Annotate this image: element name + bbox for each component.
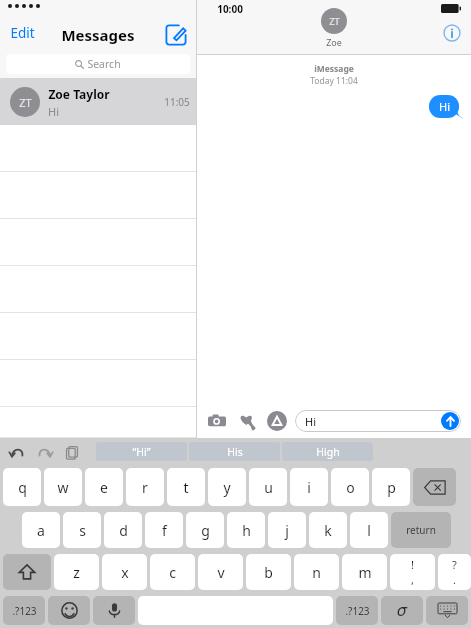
button[interactable]: x — [102, 554, 147, 590]
button[interactable]: Dictation — [93, 596, 135, 625]
button[interactable]: Send — [441, 412, 459, 430]
button[interactable]: Undo — [8, 443, 26, 461]
staticText: ZT — [329, 15, 340, 28]
staticText: Today 11:04 — [310, 75, 358, 87]
staticText: q — [18, 478, 27, 497]
button[interactable]: d — [104, 512, 142, 548]
staticText: n — [312, 563, 321, 582]
button[interactable]: Details — [443, 24, 461, 42]
button[interactable]: Search — [6, 54, 190, 74]
button[interactable]: q — [3, 468, 41, 506]
button[interactable]: Digital Touch — [237, 411, 257, 431]
button[interactable]: p — [372, 468, 410, 506]
staticText: ! — [411, 557, 414, 572]
button[interactable]: e — [85, 468, 123, 506]
button[interactable]: Redo — [36, 443, 54, 461]
staticText: m — [358, 563, 372, 582]
button[interactable]: v — [198, 554, 243, 590]
button[interactable]: Handwriting — [381, 596, 423, 625]
staticText: h — [242, 521, 251, 540]
button[interactable]: c — [150, 554, 195, 590]
staticText: a — [37, 521, 45, 540]
button[interactable]: Camera — [207, 411, 227, 431]
button[interactable]: k — [309, 512, 347, 548]
button[interactable]: His — [189, 442, 280, 461]
staticText: z — [73, 563, 80, 582]
button[interactable]: t — [167, 468, 205, 506]
button[interactable]: Compose new message — [164, 23, 188, 47]
button[interactable]: “Hi” — [96, 442, 187, 461]
staticText: His — [227, 445, 243, 459]
button[interactable]: ? — [438, 554, 471, 590]
button[interactable]: h — [227, 512, 265, 548]
button[interactable]: Edit — [6, 22, 39, 44]
staticText: w — [57, 478, 69, 497]
staticText: b — [264, 563, 273, 582]
staticText: Zoe Taylor — [48, 86, 110, 102]
button[interactable]: r — [126, 468, 164, 506]
staticText: Search — [87, 57, 121, 71]
staticText: High — [316, 445, 340, 459]
staticText: Zoe — [326, 36, 342, 48]
button[interactable]: z — [54, 554, 99, 590]
staticText: s — [79, 521, 86, 540]
staticText: l — [367, 521, 371, 540]
button[interactable]: m — [342, 554, 387, 590]
button[interactable]: ! — [390, 554, 435, 590]
button[interactable]: App Store — [267, 411, 287, 431]
staticText: i — [307, 478, 311, 497]
button[interactable]: ZT — [0, 79, 196, 125]
staticText: y — [223, 478, 231, 497]
staticText: x — [121, 563, 129, 582]
button[interactable]: Hi — [295, 410, 461, 432]
button[interactable]: j — [268, 512, 306, 548]
button[interactable]: s — [63, 512, 101, 548]
staticText: k — [324, 521, 332, 540]
staticText: o — [346, 478, 355, 497]
staticText: . — [453, 572, 456, 587]
staticText: Hi — [439, 99, 450, 114]
staticText: iMessage — [314, 63, 354, 75]
staticText: u — [264, 478, 273, 497]
button[interactable]: Hide keyboard — [426, 596, 468, 625]
staticText: r — [142, 478, 148, 497]
staticText: Hi — [48, 104, 59, 119]
button[interactable]: High — [282, 442, 373, 461]
button[interactable]: i — [290, 468, 328, 506]
button[interactable]: Emoji — [48, 596, 90, 625]
button[interactable]: ZT — [321, 8, 347, 48]
button[interactable]: .?123 — [336, 596, 378, 625]
button[interactable]: o — [331, 468, 369, 506]
staticText: .?123 — [345, 604, 370, 618]
button[interactable]: g — [186, 512, 224, 548]
button[interactable]: return — [391, 512, 451, 548]
button[interactable]: u — [249, 468, 287, 506]
staticText: 𝜎 — [397, 603, 407, 619]
button[interactable]: w — [44, 468, 82, 506]
staticText: return — [406, 523, 436, 537]
staticText: v — [217, 563, 225, 582]
staticText: j — [285, 521, 289, 540]
button[interactable]: b — [246, 554, 291, 590]
staticText: 10:00 — [217, 2, 243, 16]
staticText: .?123 — [12, 604, 37, 618]
button[interactable]: f — [145, 512, 183, 548]
staticText: “Hi” — [132, 445, 151, 459]
staticText: f — [162, 521, 167, 540]
staticText: ? — [452, 557, 457, 572]
button[interactable]: l — [350, 512, 388, 548]
button[interactable]: Paste — [64, 444, 80, 460]
staticText: ZT — [19, 95, 32, 110]
button[interactable]: n — [294, 554, 339, 590]
staticText: Messages — [61, 25, 135, 45]
button[interactable]: .?123 — [3, 596, 45, 625]
staticText: Hi — [305, 414, 316, 429]
staticText: c — [169, 563, 176, 582]
button[interactable]: Backspace — [413, 468, 456, 506]
staticText: , — [411, 572, 414, 587]
button[interactable]: a — [22, 512, 60, 548]
button[interactable]: Shift — [3, 554, 51, 590]
button[interactable]: y — [208, 468, 246, 506]
staticText: Edit — [10, 24, 35, 42]
